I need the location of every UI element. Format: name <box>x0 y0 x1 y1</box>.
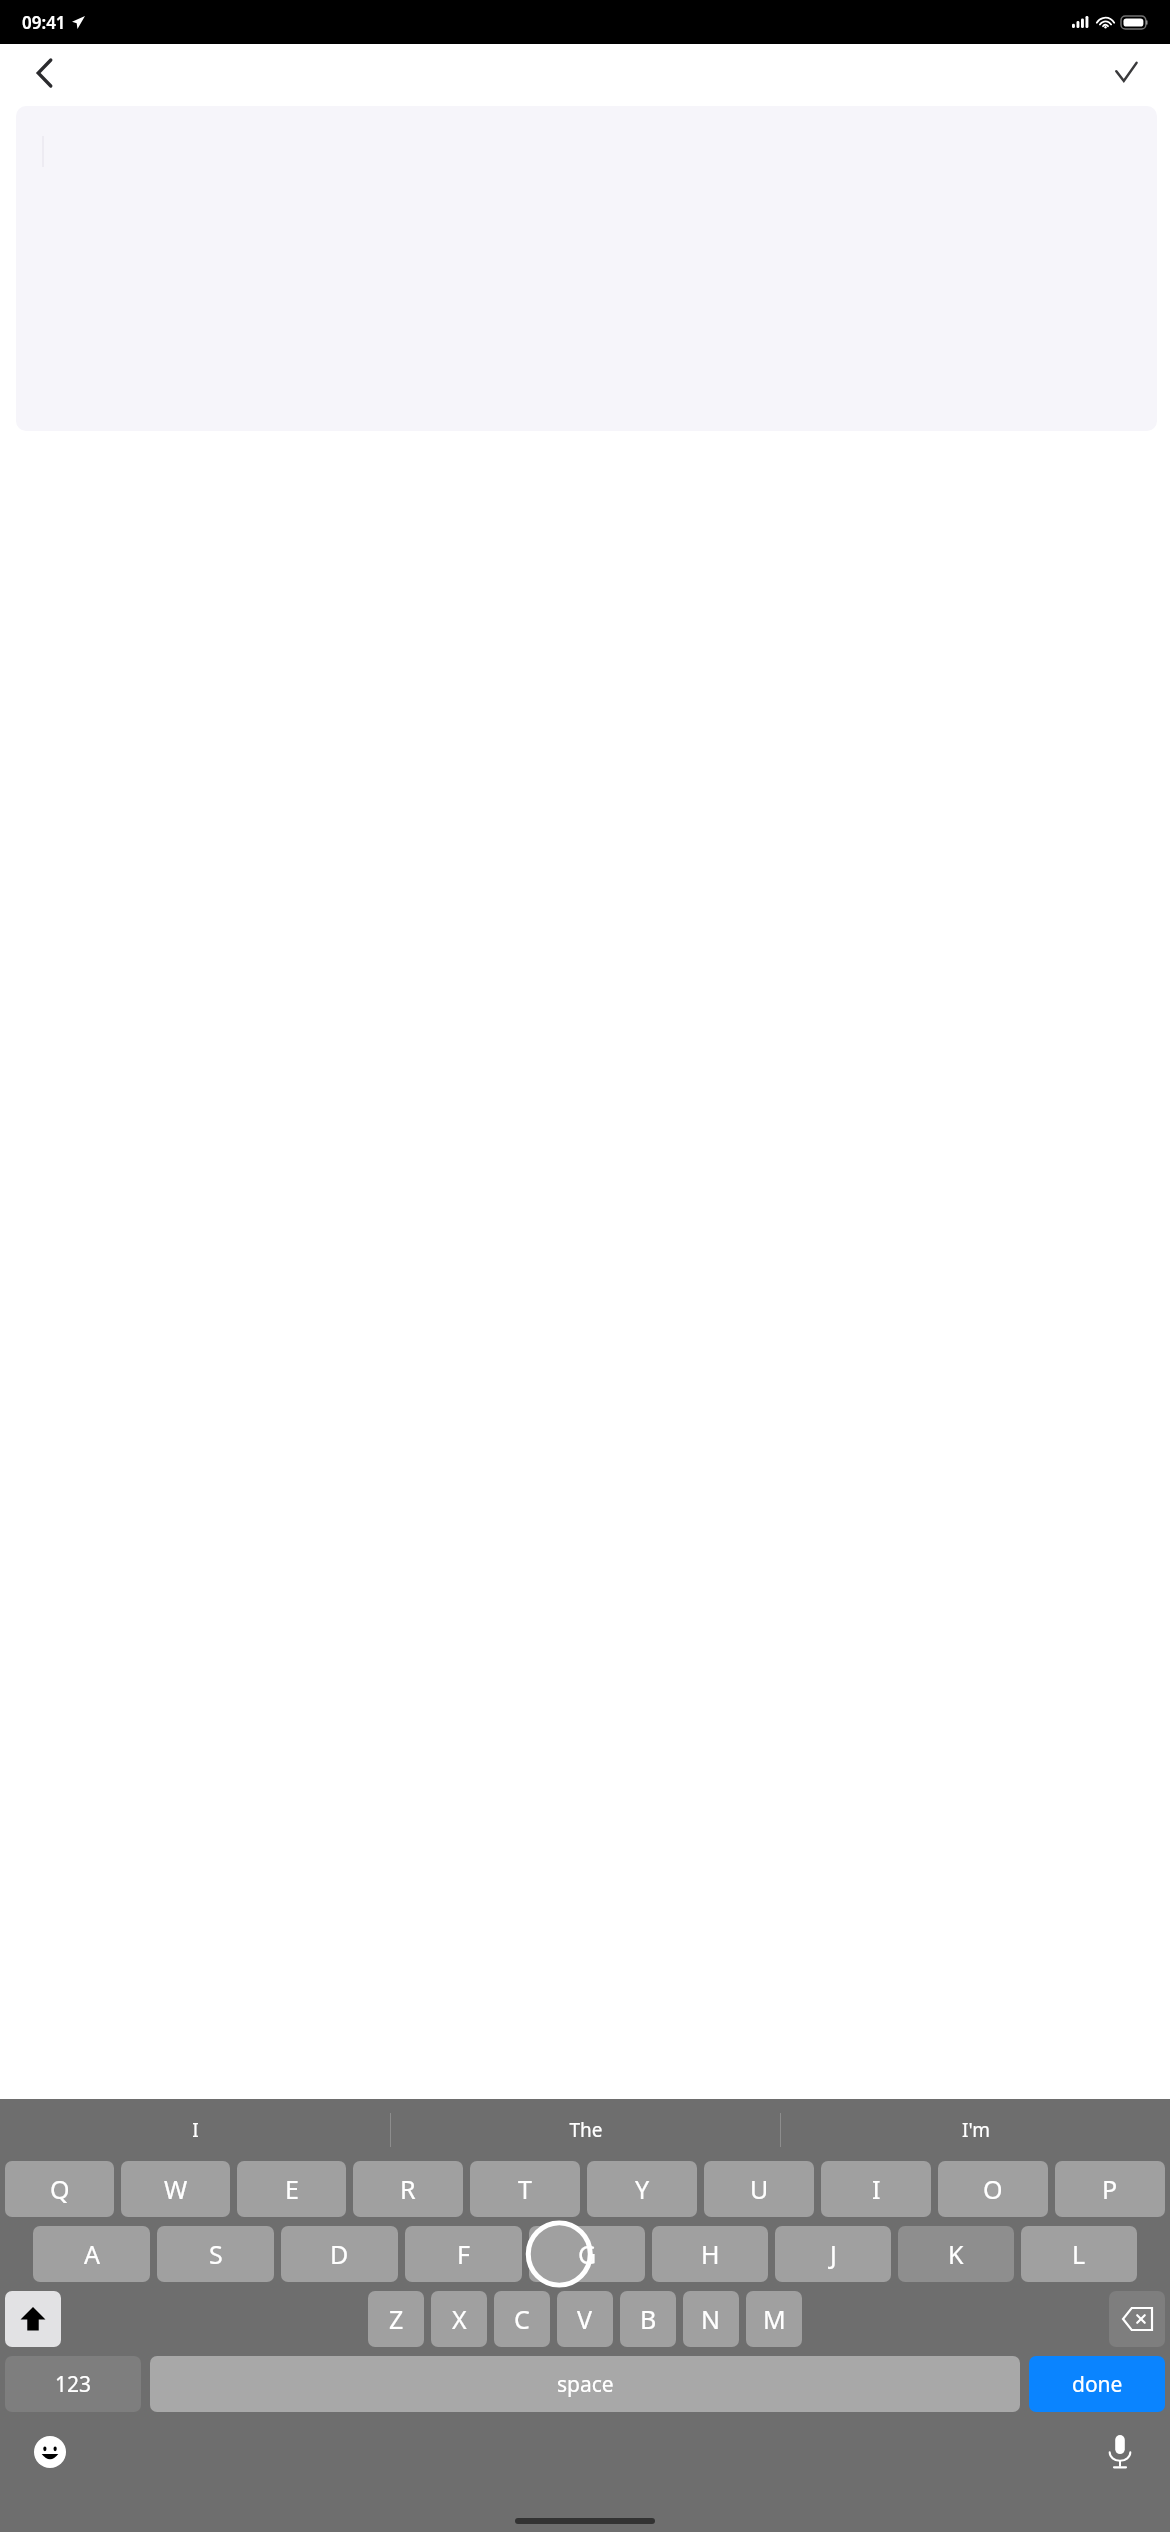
staticText: B <box>640 2302 657 2336</box>
button[interactable]: G <box>529 2226 645 2282</box>
button[interactable]: I <box>821 2161 931 2217</box>
button[interactable]: H <box>652 2226 768 2282</box>
staticText: M <box>763 2302 786 2336</box>
button[interactable]: Emoji <box>26 2428 74 2476</box>
button[interactable]: Backspace <box>1109 2291 1165 2347</box>
button[interactable]: N <box>683 2291 739 2347</box>
button[interactable]: S <box>157 2226 274 2282</box>
button[interactable]: P <box>1055 2161 1165 2217</box>
button[interactable]: done <box>1029 2356 1165 2412</box>
staticText: Q <box>50 2172 70 2206</box>
staticText: Y <box>635 2172 650 2206</box>
staticText: 09:41 <box>22 11 66 34</box>
staticText: 123 <box>55 2370 92 2399</box>
button[interactable]: F <box>405 2226 522 2282</box>
staticText: done <box>1072 2370 1123 2399</box>
staticText: C <box>514 2302 530 2336</box>
staticText: O <box>983 2172 1003 2206</box>
staticText: J <box>830 2237 837 2271</box>
button[interactable]: E <box>237 2161 346 2217</box>
staticText: T <box>518 2172 532 2206</box>
button[interactable]: Z <box>368 2291 424 2347</box>
button[interactable]: space <box>150 2356 1020 2412</box>
staticText: I <box>872 2172 881 2206</box>
staticText: L <box>1072 2237 1086 2271</box>
staticText: F <box>457 2237 470 2271</box>
staticText: The <box>569 2117 603 2143</box>
button[interactable]: M <box>746 2291 802 2347</box>
button[interactable]: I <box>0 2099 390 2161</box>
staticText: I'm <box>962 2117 990 2143</box>
button[interactable]: B <box>620 2291 676 2347</box>
button[interactable]: K <box>898 2226 1014 2282</box>
button[interactable]: L <box>1021 2226 1137 2282</box>
button[interactable]: O <box>938 2161 1048 2217</box>
button[interactable]: T <box>470 2161 580 2217</box>
button[interactable]: W <box>121 2161 230 2217</box>
staticText: V <box>577 2302 593 2336</box>
button[interactable]: I'm <box>781 2099 1170 2161</box>
staticText: W <box>164 2172 188 2206</box>
staticText: Z <box>389 2302 404 2336</box>
staticText: K <box>948 2237 964 2271</box>
button[interactable]: Q <box>5 2161 114 2217</box>
button[interactable]: U <box>704 2161 814 2217</box>
button[interactable]: Dictate <box>1096 2428 1144 2476</box>
button[interactable]: C <box>494 2291 550 2347</box>
staticText: X <box>452 2302 467 2336</box>
button[interactable]: The <box>391 2099 780 2161</box>
staticText: A <box>84 2237 100 2271</box>
button[interactable]: 123 <box>5 2356 141 2412</box>
button[interactable]: J <box>775 2226 891 2282</box>
staticText: G <box>578 2237 597 2271</box>
staticText: H <box>701 2237 720 2271</box>
button[interactable]: Back <box>20 49 68 97</box>
staticText: U <box>750 2172 769 2206</box>
button[interactable]: Shift <box>5 2291 61 2347</box>
button[interactable]: D <box>281 2226 398 2282</box>
button[interactable]: V <box>557 2291 613 2347</box>
button[interactable]: X <box>431 2291 487 2347</box>
staticText: D <box>330 2237 349 2271</box>
staticText: R <box>400 2172 416 2206</box>
staticText: I <box>192 2117 199 2143</box>
staticText: P <box>1102 2172 1118 2206</box>
button[interactable]: R <box>353 2161 463 2217</box>
button[interactable]: Y <box>587 2161 697 2217</box>
button[interactable]: A <box>33 2226 150 2282</box>
staticText: S <box>209 2237 223 2271</box>
button[interactable]: Done <box>1102 49 1150 97</box>
staticText: space <box>557 2370 614 2399</box>
staticText: N <box>701 2302 721 2336</box>
staticText: E <box>285 2172 299 2206</box>
